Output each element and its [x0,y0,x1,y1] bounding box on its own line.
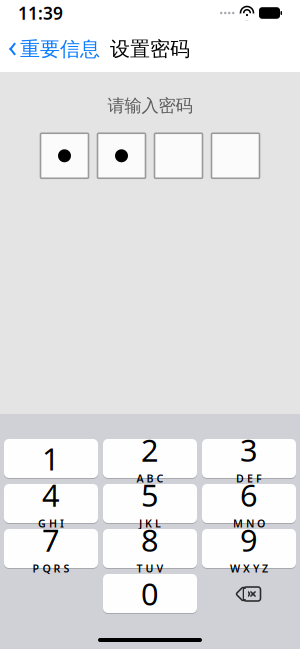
button[interactable]: 3 [202,439,296,479]
staticText: D E F [236,471,262,485]
button[interactable]: 4 [4,484,98,524]
button[interactable]: 5 [103,484,197,524]
staticText: 5 [141,475,159,515]
staticText: 7 [42,520,60,560]
staticText: 0 [141,573,159,614]
staticText: 2 [141,430,159,470]
staticText: 重要信息 [20,37,100,61]
staticText: P Q R S [32,561,69,575]
staticText: 4 [42,475,60,515]
staticText: 8 [141,520,159,560]
staticText: 设置密码 [110,37,190,61]
button[interactable]: 6 [202,484,296,524]
staticText: J K L [139,516,161,530]
staticText: M N O [233,516,265,530]
staticText: T U V [136,561,163,575]
button[interactable]: 0 [103,574,197,614]
button[interactable]: 1 [4,439,98,479]
button[interactable]: 8 [103,529,197,569]
button[interactable]: Delete [202,574,296,614]
staticText: 3 [240,430,258,470]
staticText: 6 [240,475,258,515]
button[interactable]: 2 [103,439,197,479]
staticText: W X Y Z [230,561,268,575]
staticText: 11:39 [18,1,63,24]
button[interactable]: 重要信息 [0,31,100,67]
staticText: 1 [42,438,60,479]
staticText: G H I [38,516,64,530]
staticText: A B C [136,471,163,485]
staticText: 请输入密码 [107,95,192,116]
button[interactable]: 7 [4,529,98,569]
button[interactable]: 9 [202,529,296,569]
staticText: 9 [240,520,258,560]
